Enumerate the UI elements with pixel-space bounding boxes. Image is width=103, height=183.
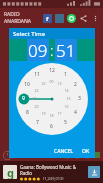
button[interactable]: Install [88, 166, 100, 178]
staticText: 4 [74, 109, 77, 116]
button[interactable]: Control [84, 152, 91, 159]
staticText: OK [82, 148, 90, 155]
staticText: 11 [34, 71, 40, 78]
staticText: (1,249,013) [43, 176, 64, 181]
staticText: 6 [50, 123, 53, 130]
staticText: Gaana: Bollywood Music & Radio [20, 164, 88, 176]
staticText: 9 [22, 95, 25, 102]
button[interactable]: Facebook [43, 14, 52, 23]
button[interactable]: Twitter [55, 14, 64, 23]
staticText: 17 [57, 111, 62, 116]
staticText: 1 [64, 71, 67, 78]
staticText: 2 [74, 81, 77, 88]
staticText: 22 [34, 88, 39, 93]
staticText: ANARDANA [4, 18, 32, 25]
button[interactable]: 09 [27, 39, 49, 61]
button[interactable]: Control [74, 152, 81, 159]
staticText: 7 [36, 119, 39, 126]
button[interactable]: WhatsApp [67, 14, 76, 23]
button[interactable]: g [0, 161, 103, 183]
staticText: 5 [64, 119, 67, 126]
button[interactable]: Play [3, 151, 12, 160]
button[interactable]: 51 [55, 39, 77, 61]
staticText: 14 [64, 88, 69, 93]
button[interactable]: Equalizer [94, 152, 100, 158]
staticText: 23 [41, 81, 46, 86]
staticText: 10 [24, 81, 30, 88]
staticText: Select Time [13, 30, 46, 38]
button[interactable]: Share [79, 14, 88, 23]
staticText: 16 [64, 104, 69, 109]
staticText: 20 [34, 104, 39, 109]
button[interactable]: CANCEL [50, 146, 77, 157]
staticText: 19 [41, 111, 46, 116]
staticText: g [7, 165, 14, 179]
staticText: RADIO [4, 11, 20, 18]
staticText: 15 [66, 96, 71, 101]
staticText: 13 [57, 81, 62, 86]
staticText: 18 [49, 113, 54, 118]
staticText: f [46, 15, 49, 23]
staticText: 21 [32, 96, 37, 101]
staticText: : [50, 41, 54, 60]
staticText: 09 [28, 39, 48, 61]
button[interactable]: More options [91, 14, 100, 23]
staticText: 3 [78, 95, 81, 102]
staticText: 12 [49, 67, 55, 74]
button[interactable]: Control [64, 152, 71, 159]
staticText: 51 [56, 39, 76, 61]
staticText: 00 [49, 79, 54, 84]
staticText: CANCEL [54, 148, 73, 155]
staticText: 8 [26, 109, 29, 116]
button[interactable]: OK [77, 146, 95, 157]
